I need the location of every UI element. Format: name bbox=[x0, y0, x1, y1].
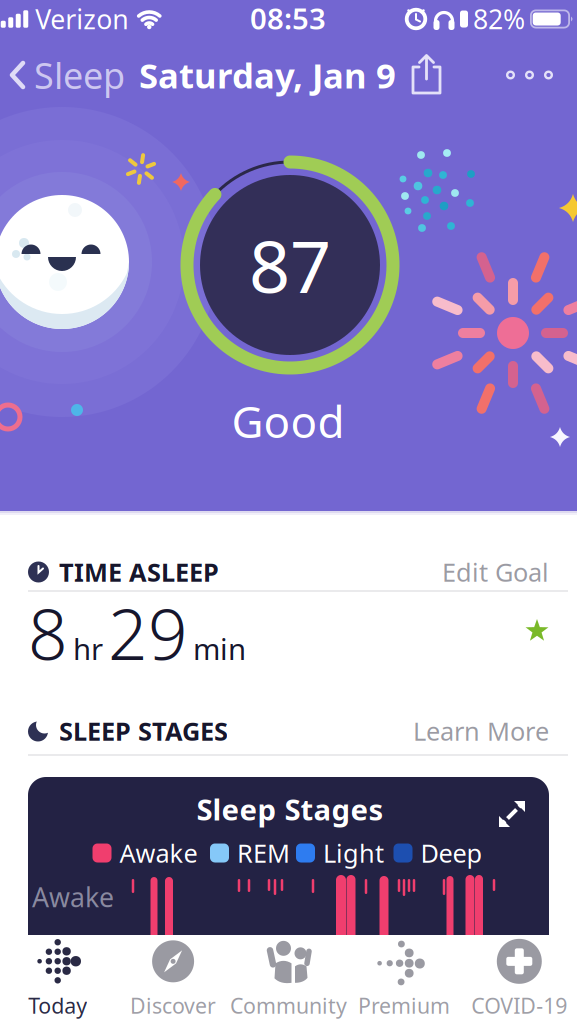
button[interactable]: Today bbox=[0, 935, 115, 1024]
staticText: Sleep bbox=[34, 51, 125, 99]
staticText: COVID-19 bbox=[471, 991, 567, 1020]
staticText: 87 bbox=[249, 217, 331, 313]
staticText: TIME ASLEEP bbox=[59, 555, 219, 589]
button[interactable]: Sleep bbox=[0, 51, 125, 99]
staticText: min bbox=[193, 629, 246, 668]
staticText: Light bbox=[323, 836, 384, 870]
staticText: 29 bbox=[108, 587, 188, 679]
staticText: Awake bbox=[119, 836, 197, 870]
staticText: Premium bbox=[358, 991, 450, 1020]
button[interactable]: Discover bbox=[115, 935, 231, 1024]
button[interactable]: Learn More bbox=[413, 714, 549, 748]
staticText: SLEEP STAGES bbox=[59, 714, 228, 748]
button[interactable]: Expand bbox=[497, 799, 527, 829]
staticText: 8 bbox=[28, 587, 68, 679]
staticText: Today bbox=[28, 991, 87, 1020]
staticText: Awake bbox=[32, 879, 114, 915]
button[interactable]: Community bbox=[231, 935, 346, 1024]
staticText: Good bbox=[231, 392, 344, 450]
staticText: Edit Goal bbox=[442, 555, 549, 589]
staticText: 08:53 bbox=[250, 0, 326, 37]
staticText: Discover bbox=[130, 991, 216, 1020]
staticText: REM bbox=[237, 836, 290, 870]
staticText: Learn More bbox=[413, 714, 549, 748]
staticText: Sleep Stages bbox=[196, 789, 383, 828]
staticText: Deep bbox=[420, 836, 482, 870]
staticText: Community bbox=[230, 991, 347, 1020]
button[interactable]: COVID-19 bbox=[462, 935, 577, 1024]
staticText: Saturday, Jan 9 bbox=[139, 52, 396, 98]
button[interactable]: Premium bbox=[346, 935, 462, 1024]
staticText: hr bbox=[73, 629, 103, 668]
button[interactable]: Edit Goal bbox=[442, 555, 549, 589]
staticText: Verizon bbox=[35, 1, 128, 37]
button[interactable]: More bbox=[506, 70, 577, 79]
staticText: 82% bbox=[473, 1, 525, 37]
button[interactable]: Share bbox=[409, 53, 506, 97]
